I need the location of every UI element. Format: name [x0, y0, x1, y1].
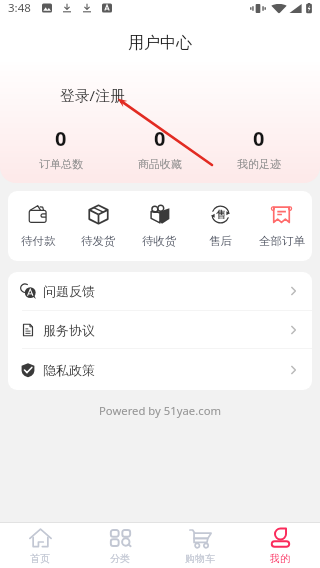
staticText: 商品收藏: [138, 157, 182, 171]
staticText: 用户中心: [128, 33, 192, 53]
button[interactable]: 待付款: [8, 204, 68, 248]
staticText: Powered by 51yae.com: [0, 403, 320, 418]
staticText: 0: [253, 125, 265, 152]
staticText: 我的足迹: [237, 157, 281, 171]
staticText: 待发货: [81, 234, 116, 248]
button[interactable]: 我的: [240, 526, 320, 565]
button[interactable]: 服务协议: [8, 311, 312, 348]
staticText: 购物车: [185, 552, 215, 565]
button[interactable]: 0: [12, 125, 110, 171]
staticText: 我的: [270, 552, 290, 565]
button[interactable]: 首页: [0, 526, 80, 565]
staticText: 待付款: [21, 234, 56, 248]
staticText: 隐私政策: [43, 362, 95, 378]
staticText: 登录/注册: [60, 85, 125, 105]
button[interactable]: 全部订单: [251, 204, 312, 248]
staticText: 待收货: [142, 234, 177, 248]
staticText: 订单总数: [39, 157, 83, 171]
staticText: 售后: [209, 234, 232, 248]
staticText: 0: [55, 125, 67, 152]
button[interactable]: 待发货: [68, 204, 129, 248]
button[interactable]: 待收货: [129, 204, 190, 248]
button[interactable]: 分类: [80, 526, 160, 565]
button[interactable]: 购物车: [160, 526, 240, 565]
staticText: 0: [154, 125, 166, 152]
staticText: 售: [216, 208, 226, 221]
button[interactable]: 0: [209, 125, 308, 171]
staticText: 问题反馈: [43, 283, 95, 299]
button[interactable]: 0: [110, 125, 209, 171]
staticText: 分类: [110, 552, 130, 565]
button[interactable]: 隐私政策: [8, 349, 312, 390]
staticText: 首页: [30, 552, 50, 565]
staticText: 3:48: [8, 0, 31, 16]
button[interactable]: 问题反馈: [8, 272, 312, 310]
staticText: 全部订单: [259, 234, 305, 248]
staticText: 服务协议: [43, 322, 95, 338]
button[interactable]: 登录/注册: [60, 85, 125, 105]
button[interactable]: 售: [190, 204, 251, 248]
